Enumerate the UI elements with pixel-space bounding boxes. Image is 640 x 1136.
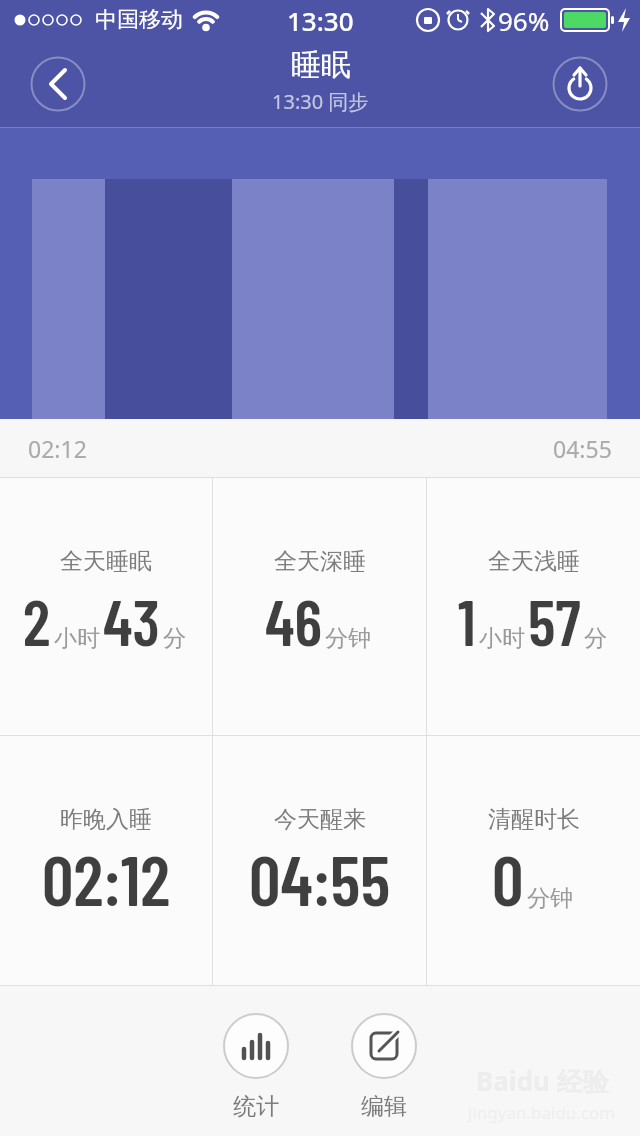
staticText: 编辑 [361,1092,407,1121]
staticText: 2 [23,582,51,659]
staticText: 分钟 [325,624,371,653]
staticText: 昨晚入睡 [60,805,152,834]
staticText: Baidu 经验 [476,1063,609,1099]
button[interactable]: 全天深睡 [213,478,426,735]
staticText: 57 [528,582,581,659]
staticText: 02:12 [28,433,87,464]
staticText: 分 [584,624,607,653]
staticText: 分 [163,624,186,653]
button[interactable]: 全天睡眠 [0,478,212,735]
staticText: 今天醒来 [274,805,366,834]
staticText: 小时 [54,624,100,653]
button[interactable]: 昨晚入睡 [0,736,212,985]
staticText: 全天深睡 [274,547,366,576]
button[interactable]: 全天浅睡 [427,478,640,735]
button[interactable] [553,57,607,111]
button[interactable]: 今天醒来 [213,736,426,985]
staticText: 统计 [233,1092,279,1121]
button[interactable]: 统计 [223,1013,289,1121]
staticText: 1 [458,582,476,659]
staticText: 96% [498,3,550,38]
staticText: 中国移动 [95,6,183,34]
staticText: 46 [265,582,322,659]
button[interactable]: 清醒时长 [427,736,640,985]
staticText: 13:30 [287,3,354,38]
button[interactable] [31,57,85,111]
staticText: 02:12 [42,836,171,920]
staticText: 0 [492,836,524,920]
staticText: 04:55 [553,433,612,464]
staticText: 睡眠 [291,46,351,84]
staticText: 04:55 [249,836,391,920]
staticText: 全天睡眠 [60,547,152,576]
staticText: 小时 [479,624,525,653]
staticText: 分钟 [527,884,573,913]
staticText: 43 [103,582,160,659]
button[interactable]: 编辑 [351,1013,417,1121]
staticText: 13:30 同步 [272,88,369,115]
staticText: 清醒时长 [488,805,580,834]
staticText: 全天浅睡 [488,547,580,576]
